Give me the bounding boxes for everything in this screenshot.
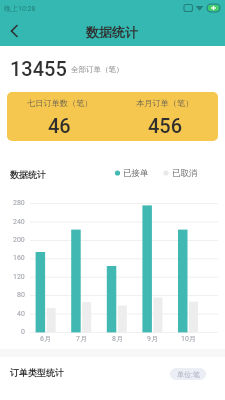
staticText: 8月 [112, 334, 123, 343]
staticText: 200 [13, 236, 25, 244]
button[interactable]: 单位:笔 [170, 368, 206, 380]
staticText: 全部订单（笔） [71, 65, 124, 74]
staticText: 160 [13, 254, 25, 262]
staticText: 80 [17, 291, 25, 299]
staticText: 280 [13, 199, 25, 207]
staticText: 13455 [10, 57, 67, 80]
staticText: 晚上10:28 [4, 4, 36, 13]
button[interactable]: 七日订单数（笔） [7, 92, 218, 141]
staticText: 单位:笔 [177, 370, 200, 379]
staticText: 0 [21, 328, 25, 336]
staticText: 240 [13, 218, 25, 226]
staticText: 10月 [181, 334, 196, 343]
staticText: 已接单 [123, 168, 149, 179]
staticText: 七日订单数（笔） [27, 98, 93, 108]
staticText: 7月 [76, 334, 87, 343]
staticText: 数据统计 [86, 24, 138, 39]
staticText: 订单类型统计 [10, 367, 64, 378]
button[interactable] [0, 16, 28, 46]
staticText: 46 [48, 114, 71, 137]
staticText: 9月 [147, 334, 158, 343]
staticText: 已取消 [172, 168, 198, 179]
staticText: 120 [13, 273, 25, 281]
staticText: 40 [17, 310, 25, 318]
staticText: 6月 [40, 334, 51, 343]
staticText: 数据统计 [10, 169, 46, 180]
staticText: 456 [148, 114, 183, 137]
staticText: 本月订单（笔） [136, 98, 194, 108]
